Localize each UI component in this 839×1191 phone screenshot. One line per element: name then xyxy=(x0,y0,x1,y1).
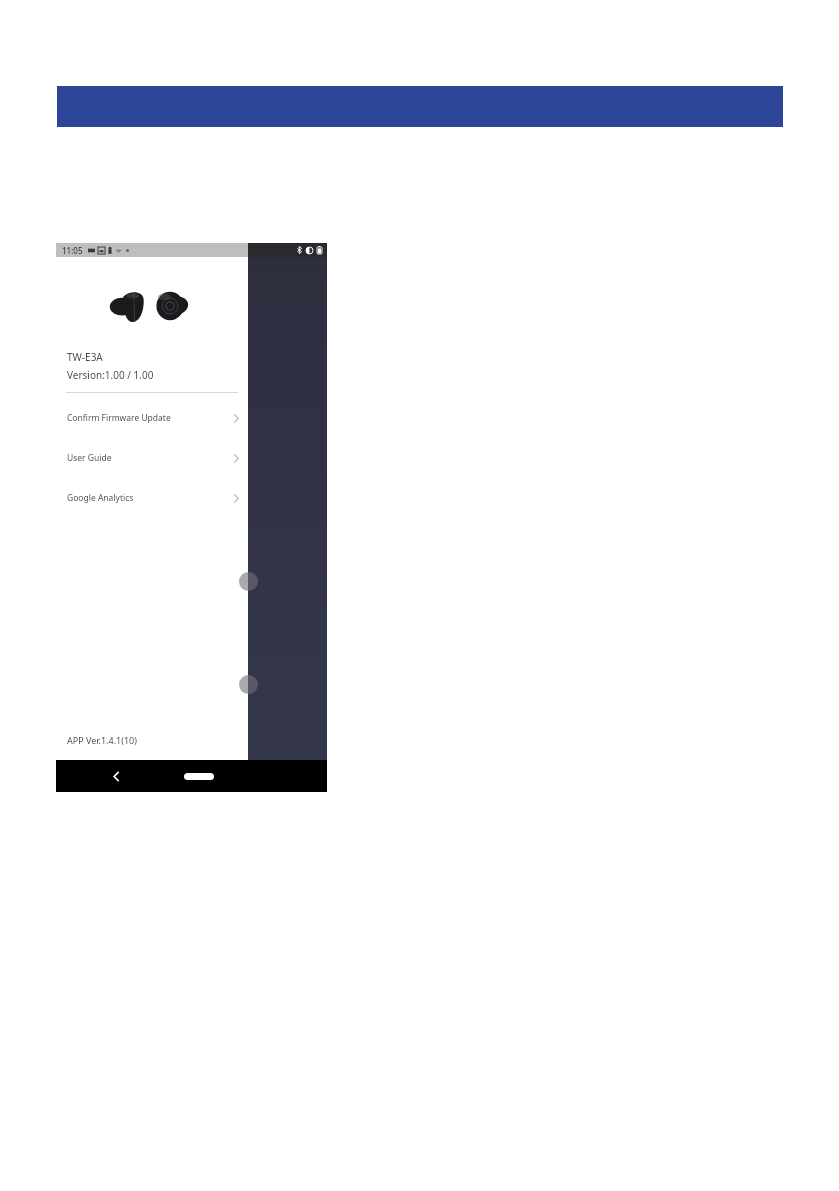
staticText: User Guide xyxy=(67,452,233,464)
staticText: Version:1.00 / 1.00 xyxy=(67,368,154,382)
staticText: Confirm Firmware Update xyxy=(67,412,233,424)
staticText: TW-E3A xyxy=(67,350,103,364)
staticText: Google Analytics xyxy=(67,492,233,504)
button[interactable]: Back xyxy=(104,764,128,788)
staticText: APP Ver.1.4.1(10) xyxy=(67,734,137,746)
button[interactable]: Home xyxy=(184,773,214,780)
button[interactable]: Confirm Firmware Update xyxy=(56,409,248,427)
button[interactable]: User Guide xyxy=(56,449,248,467)
button[interactable]: Google Analytics xyxy=(56,489,248,507)
staticText: 11:05 xyxy=(62,245,83,256)
